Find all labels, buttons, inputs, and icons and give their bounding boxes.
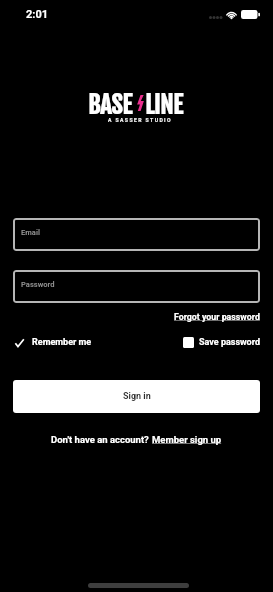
staticText: 2:01 xyxy=(26,8,49,21)
button[interactable]: Email xyxy=(13,218,260,251)
staticText: BASE xyxy=(88,90,132,120)
button[interactable]: Password xyxy=(13,270,260,303)
staticText: Sign in xyxy=(123,391,151,402)
staticText: Save password xyxy=(199,337,260,348)
button[interactable]: Remember me xyxy=(13,337,92,348)
staticText: Password xyxy=(21,280,55,289)
staticText: Email xyxy=(21,228,40,237)
staticText: Remember me xyxy=(32,337,92,348)
button[interactable]: Sign in xyxy=(13,380,260,413)
button[interactable]: Forgot your password xyxy=(174,312,260,322)
button[interactable]: Member sign up xyxy=(152,434,222,445)
staticText: A SASSER STUDIO xyxy=(108,117,172,123)
button[interactable]: Save password xyxy=(183,337,260,348)
staticText: Don't have an account? xyxy=(51,434,152,445)
staticText: LINE xyxy=(145,90,183,120)
